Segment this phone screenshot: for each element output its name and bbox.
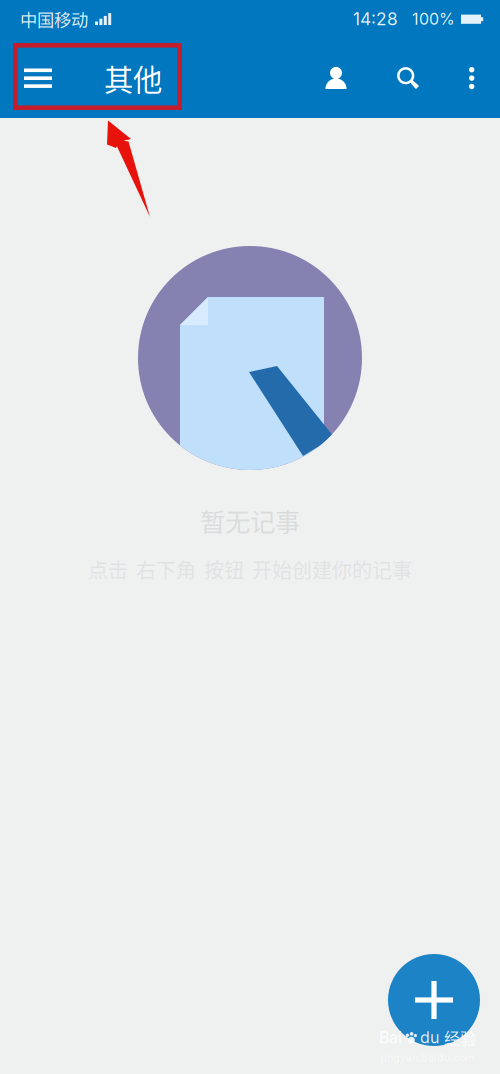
button[interactable]: Account — [300, 42, 372, 114]
button[interactable]: More options — [444, 42, 500, 114]
staticText: 点击 右下角 按钮 开始创建你的记事 — [88, 555, 412, 584]
button[interactable]: Search — [372, 42, 444, 114]
staticText: 经验 — [444, 1026, 476, 1049]
staticText: Bai — [379, 1028, 402, 1047]
staticText: 14:28 — [353, 8, 398, 29]
button[interactable]: Menu — [12, 42, 64, 114]
staticText: 暂无记事 — [200, 502, 300, 539]
staticText: du — [420, 1028, 439, 1047]
staticText: 其他 — [104, 57, 162, 99]
staticText: 中国移动 — [20, 6, 88, 32]
staticText: 100% — [412, 9, 455, 29]
button[interactable]: New note — [388, 954, 480, 1046]
